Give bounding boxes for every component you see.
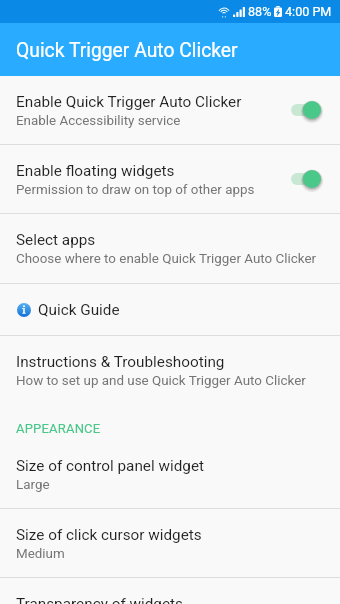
staticText: Quick Trigger Auto Clicker xyxy=(16,39,238,62)
staticText: Transparency of widgets xyxy=(16,595,183,604)
button[interactable]: Enable floating widgets, on xyxy=(291,167,323,191)
button[interactable]: Instructions & Troubleshooting xyxy=(0,336,340,405)
staticText: Size of click cursor widgets xyxy=(16,526,202,544)
staticText: Enable Accessibility service xyxy=(16,113,181,129)
staticText: Medium xyxy=(16,546,65,562)
other: Mobile signal xyxy=(233,7,245,17)
button[interactable]: Quick Guide xyxy=(0,284,340,335)
other: Battery charging xyxy=(274,6,282,17)
button[interactable]: Select apps xyxy=(0,214,340,283)
staticText: 4:00 PM xyxy=(285,4,332,19)
other: Wi-Fi xyxy=(218,6,230,18)
staticText: Select apps xyxy=(16,231,96,249)
staticText: Large xyxy=(16,477,50,493)
staticText: Quick Guide xyxy=(38,301,120,319)
button[interactable]: Size of click cursor widgets xyxy=(0,509,340,577)
button[interactable]: Enable floating widgets xyxy=(0,145,340,213)
button[interactable]: Enable Quick Trigger Auto Clicker xyxy=(0,76,340,144)
staticText: Choose where to enable Quick Trigger Aut… xyxy=(16,251,317,267)
staticText: Permission to draw on top of other apps xyxy=(16,182,255,198)
staticText: Instructions & Troubleshooting xyxy=(16,353,225,371)
staticText: APPEARANCE xyxy=(16,421,101,436)
staticText: Enable Quick Trigger Auto Clicker xyxy=(16,93,242,111)
button[interactable]: Size of control panel widget xyxy=(0,440,340,508)
staticText: How to set up and use Quick Trigger Auto… xyxy=(16,373,306,389)
staticText: Size of control panel widget xyxy=(16,457,204,475)
button[interactable]: Transparency of widgets xyxy=(0,578,340,604)
staticText: Enable floating widgets xyxy=(16,162,175,180)
staticText: 88% xyxy=(248,4,272,19)
button[interactable]: Enable Quick Trigger Auto Clicker, on xyxy=(291,98,323,122)
